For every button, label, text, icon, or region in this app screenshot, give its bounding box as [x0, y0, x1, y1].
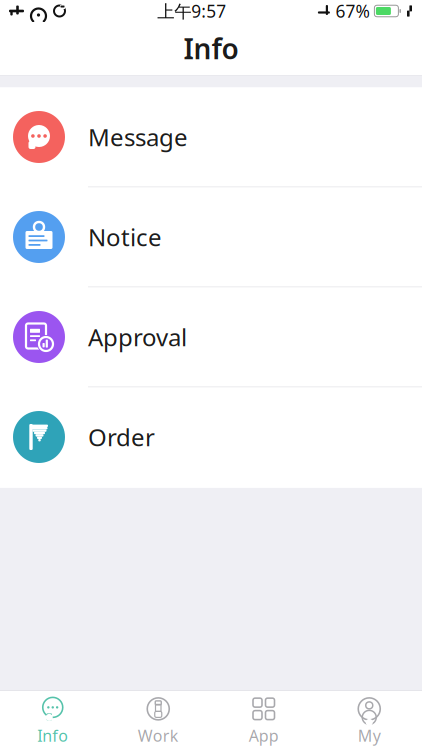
- button[interactable]: Info: [0, 691, 105, 750]
- staticText: Info: [183, 30, 238, 67]
- staticText: 67%: [335, 0, 369, 22]
- button[interactable]: Notice: [0, 187, 422, 287]
- staticText: My: [358, 725, 381, 746]
- button[interactable]: Work: [105, 691, 211, 750]
- staticText: Notice: [88, 221, 162, 253]
- button[interactable]: My: [316, 691, 422, 750]
- staticText: 上午9:57: [157, 0, 226, 22]
- staticText: Work: [138, 725, 179, 746]
- button[interactable]: Message: [0, 87, 422, 187]
- staticText: Message: [88, 121, 188, 153]
- staticText: Order: [88, 421, 155, 453]
- staticText: App: [249, 725, 279, 746]
- staticText: Approval: [88, 321, 187, 353]
- button[interactable]: App: [211, 691, 316, 750]
- staticText: Info: [37, 725, 68, 746]
- button[interactable]: Order: [0, 387, 422, 487]
- button[interactable]: Approval: [0, 287, 422, 387]
